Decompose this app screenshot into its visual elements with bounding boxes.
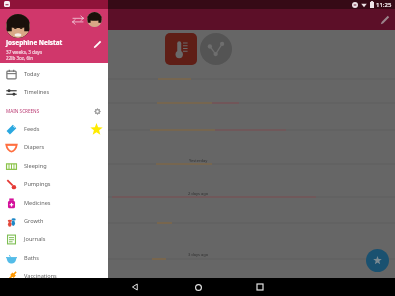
staticText: Vaccinations [24, 272, 57, 280]
button[interactable]: Other child [87, 12, 102, 27]
button[interactable]: Feeds [0, 120, 108, 138]
staticText: Diapers [24, 143, 45, 151]
button[interactable]: Pumpings [0, 175, 108, 193]
button[interactable]: Edit profile [90, 37, 104, 51]
button[interactable]: Edit [374, 9, 395, 30]
button[interactable]: Vaccinations [0, 267, 108, 285]
button[interactable]: Growth [0, 212, 108, 230]
staticText: 22lb 3oz, 6in [6, 55, 34, 61]
button[interactable]: Switch child [70, 12, 85, 27]
button[interactable]: Add entry [366, 249, 389, 272]
button[interactable]: Home [190, 278, 206, 296]
staticText: Today [24, 70, 40, 78]
button[interactable]: Today [0, 65, 108, 83]
staticText: Journals [24, 235, 46, 243]
button[interactable]: Medicines [0, 194, 108, 212]
button[interactable]: Temperature [165, 33, 197, 65]
staticText: Yesterday [189, 158, 208, 163]
staticText: 2 days ago [188, 191, 209, 196]
staticText: Pumpings [24, 180, 51, 188]
staticText: MAIN SCREENS [6, 108, 40, 114]
staticText: 11:25 [376, 1, 392, 9]
staticText: 3 days ago [188, 252, 209, 257]
staticText: Baths [24, 254, 39, 262]
staticText: Growth [24, 217, 44, 225]
button[interactable]: Journals [0, 230, 108, 248]
button[interactable]: Profile photo [6, 14, 30, 38]
button[interactable]: Sleeping [0, 157, 108, 175]
button[interactable]: Diapers [0, 138, 108, 156]
staticText: 37 weeks, 3 days [6, 49, 43, 55]
staticText: Medicines [24, 199, 51, 207]
button[interactable]: Baths [0, 249, 108, 267]
button[interactable]: Settings [91, 105, 103, 117]
button[interactable]: Activity chart [200, 33, 232, 65]
button[interactable]: Recent apps [252, 278, 268, 296]
button[interactable]: Back [127, 278, 143, 296]
staticText: Feeds [24, 125, 40, 133]
staticText: Timelines [24, 88, 50, 96]
staticText: Sleeping [24, 162, 47, 170]
staticText: Josephine Neistat [6, 38, 63, 47]
button[interactable]: Timelines [0, 83, 108, 101]
